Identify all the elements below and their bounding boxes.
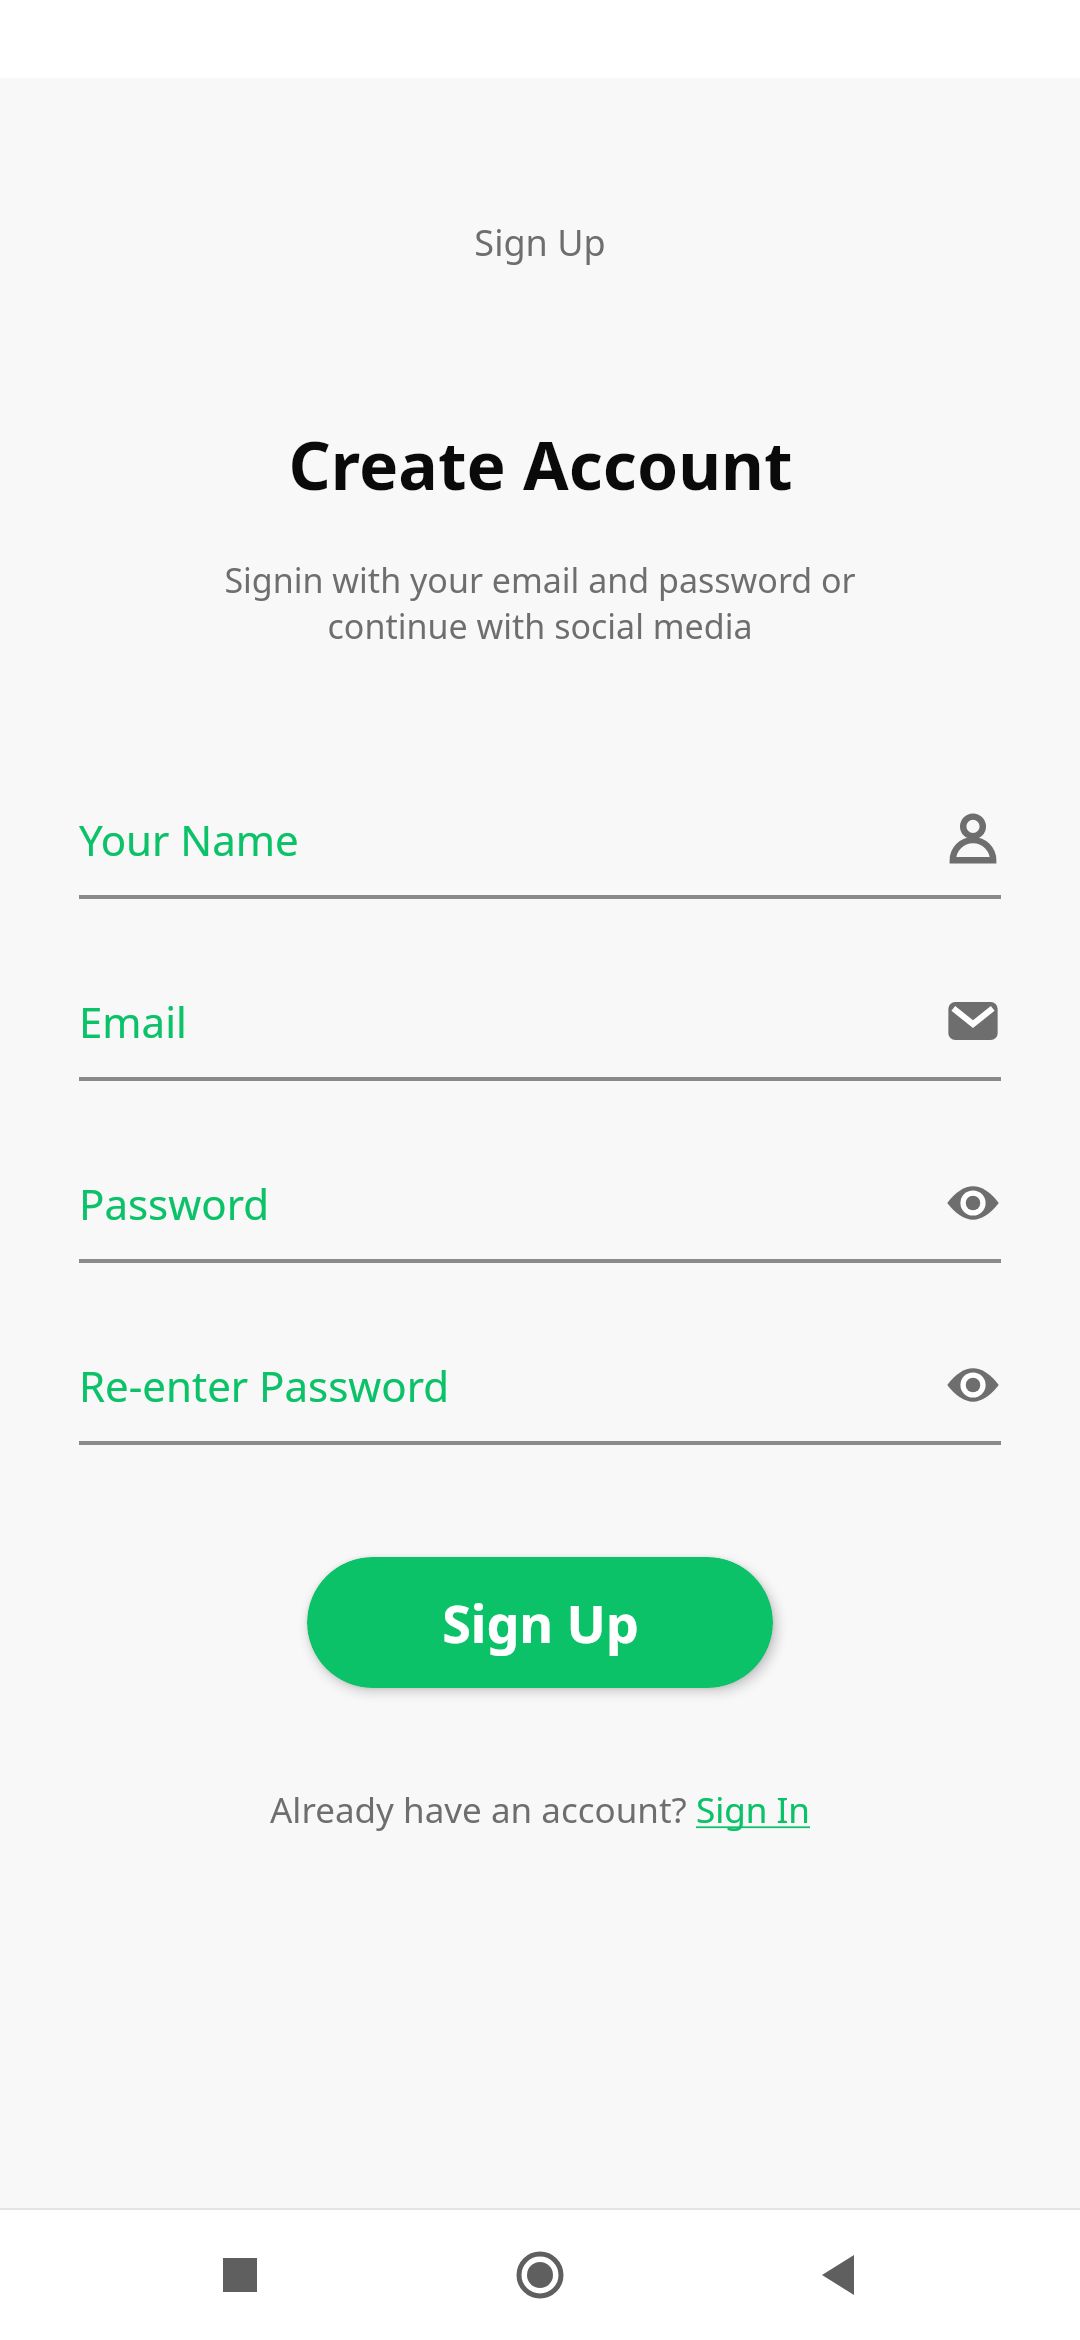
staticText: Signin with your email and password or c… bbox=[0, 557, 1080, 649]
button[interactable]: Home bbox=[480, 2215, 600, 2335]
button[interactable]: Recents bbox=[180, 2215, 300, 2335]
button[interactable]: Your Name bbox=[79, 797, 1001, 899]
other: Email bbox=[945, 993, 1001, 1049]
staticText: Your Name bbox=[79, 811, 945, 868]
button[interactable]: Password bbox=[79, 1161, 1001, 1263]
staticText: Sign In bbox=[696, 1786, 810, 1834]
other: Toggle password visibility bbox=[945, 1175, 1001, 1231]
staticText: Password bbox=[79, 1175, 945, 1232]
staticText: Create Account bbox=[288, 419, 793, 509]
staticText: Already have an account? bbox=[270, 1786, 696, 1834]
button[interactable]: Sign Up bbox=[307, 1557, 773, 1688]
other: Name bbox=[945, 811, 1001, 867]
staticText: Re-enter Password bbox=[79, 1357, 945, 1414]
staticText: Email bbox=[79, 993, 945, 1050]
button[interactable]: Re-enter Password bbox=[79, 1343, 1001, 1445]
other: Toggle password visibility bbox=[945, 1357, 1001, 1413]
staticText: Sign Up bbox=[442, 1587, 639, 1658]
staticText: Sign Up bbox=[474, 218, 606, 267]
button[interactable]: Back bbox=[780, 2215, 900, 2335]
button[interactable]: Sign In bbox=[696, 1786, 810, 1834]
button[interactable]: Email bbox=[79, 979, 1001, 1081]
